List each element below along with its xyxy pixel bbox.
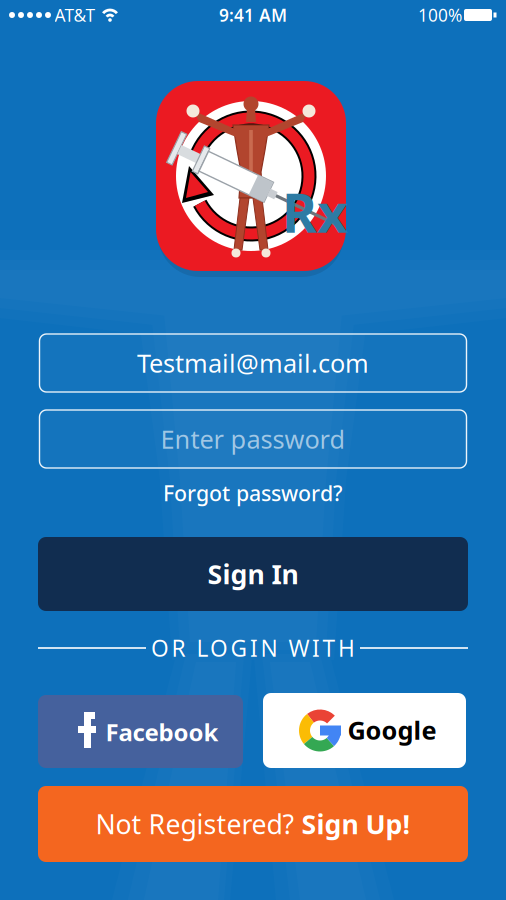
button[interactable]: Testmail@mail.com [39,334,466,392]
button[interactable]: Google [263,693,466,768]
staticText: Rx [282,177,348,247]
button[interactable]: Forgot password? [163,479,343,507]
staticText: Testmail@mail.com [137,346,369,380]
staticText: Google [347,713,436,747]
staticText: OR LOGIN WITH [151,633,355,663]
button[interactable]: Sign In [38,537,468,611]
staticText: Not Registered? Sign Up! [95,806,410,842]
button[interactable]: Enter password [39,410,466,468]
button[interactable]: Not Registered? Sign Up! [38,786,468,862]
staticText: Facebook [105,716,218,748]
staticText: 100% [418,3,462,26]
staticText: Forgot password? [163,479,343,507]
button[interactable]: Facebook [38,695,243,768]
staticText: Sign In [207,556,298,592]
staticText: 9:41 AM [219,3,287,26]
staticText: Enter password [160,422,345,456]
staticText: AT&T [54,3,95,26]
